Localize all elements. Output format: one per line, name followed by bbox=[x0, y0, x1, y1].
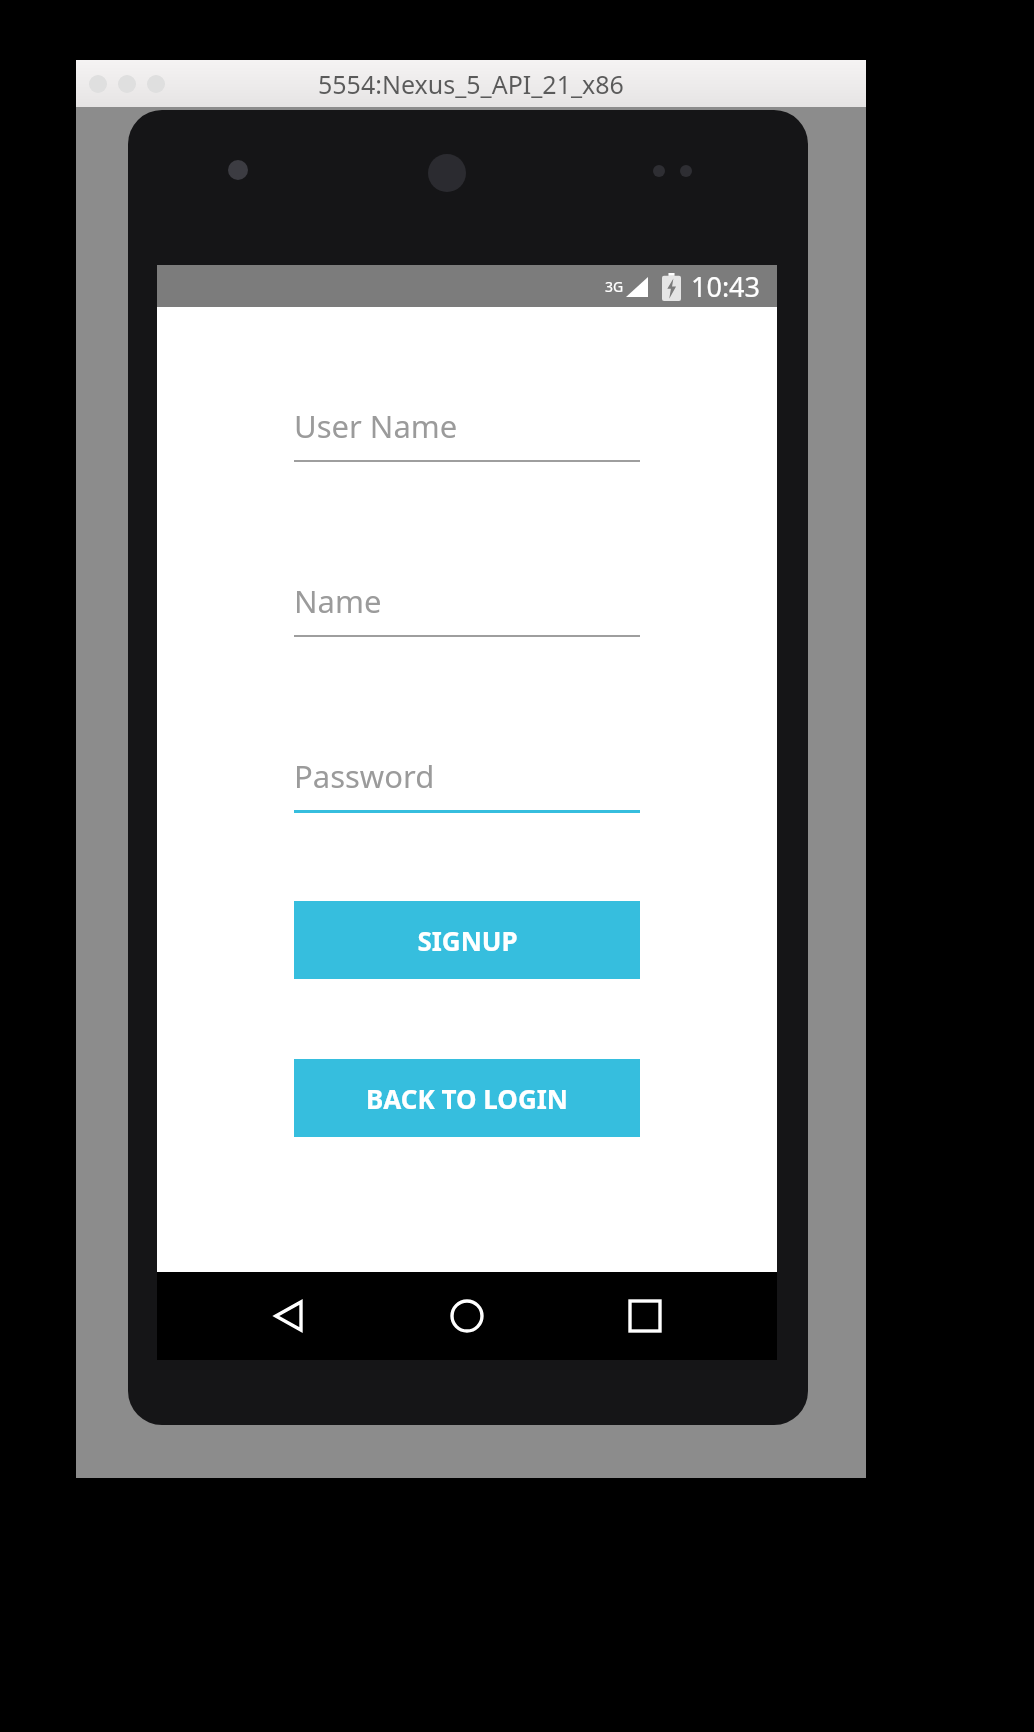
button[interactable]: Password bbox=[294, 755, 640, 813]
button[interactable]: Recent apps bbox=[599, 1272, 691, 1360]
staticText: Name bbox=[294, 580, 382, 622]
staticText: Password bbox=[294, 755, 435, 797]
button[interactable]: SIGNUP bbox=[294, 901, 640, 979]
button[interactable] bbox=[89, 75, 107, 93]
staticText: User Name bbox=[294, 405, 458, 447]
button[interactable]: Back bbox=[243, 1272, 335, 1360]
staticText: 3G bbox=[605, 277, 624, 296]
button[interactable]: Name bbox=[294, 580, 640, 637]
button[interactable]: BACK TO LOGIN bbox=[294, 1059, 640, 1137]
staticText: 5554:Nexus_5_API_21_x86 bbox=[318, 67, 624, 101]
button[interactable]: Home bbox=[421, 1272, 513, 1360]
staticText: BACK TO LOGIN bbox=[366, 1081, 568, 1116]
button[interactable]: User Name bbox=[294, 405, 640, 462]
button[interactable] bbox=[118, 75, 136, 93]
button[interactable] bbox=[147, 75, 165, 93]
staticText: 10:43 bbox=[691, 268, 761, 305]
staticText: SIGNUP bbox=[417, 923, 518, 958]
